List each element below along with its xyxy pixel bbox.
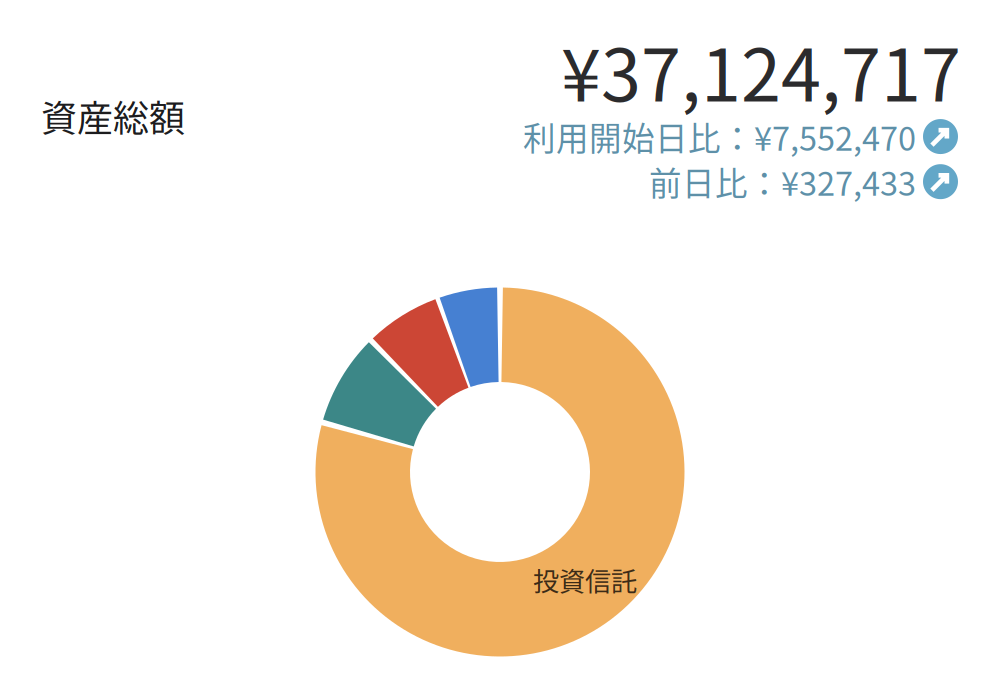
- staticText: ¥37,124,717: [561, 18, 961, 122]
- staticText: 前日比：¥327,433: [649, 158, 916, 205]
- staticText: 投資信託: [533, 561, 637, 599]
- button[interactable]: 前日比：¥327,433: [649, 158, 958, 205]
- button[interactable]: 利用開始日比：¥7,552,470: [523, 113, 958, 160]
- staticText: 利用開始日比：¥7,552,470: [523, 113, 916, 160]
- staticText: 資産総額: [41, 90, 185, 142]
